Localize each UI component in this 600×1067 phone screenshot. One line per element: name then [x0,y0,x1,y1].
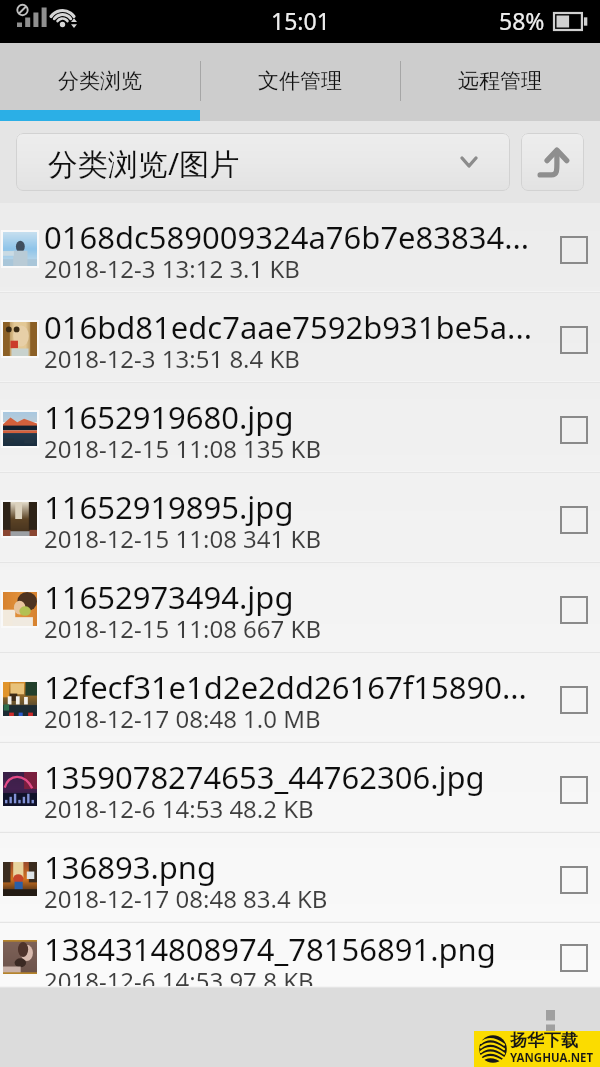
button[interactable]: 11652919895.jpg [0,473,600,563]
button[interactable]: Select file [540,293,600,383]
button[interactable]: Select file [540,383,600,473]
button[interactable]: 136893.png [0,833,600,923]
staticText: 016bd81edc7aae7592b931be5a... [44,306,533,348]
button[interactable]: 016bd81edc7aae7592b931be5a... [0,293,600,383]
button[interactable]: 11652919680.jpg [0,383,600,473]
staticText: 1359078274653_44762306.jpg [44,756,485,798]
staticText: YANGHUA.NET [510,1050,594,1065]
staticText: 分类浏览/图片 [48,143,240,184]
staticText: 2018-12-15 11:08 667 KB [44,612,321,645]
staticText: 2018-12-6 14:53 48.2 KB [44,792,314,825]
button[interactable]: 远程管理 [400,43,600,121]
button[interactable]: Select file [540,653,600,743]
staticText: 11652919680.jpg [44,396,294,438]
staticText: 12fecf31e1d2e2dd26167f15890... [44,666,527,708]
staticText: 2018-12-15 11:08 341 KB [44,522,321,555]
staticText: 136893.png [44,846,216,888]
button[interactable]: Select file [540,923,600,988]
staticText: 2018-12-15 11:08 135 KB [44,432,321,465]
staticText: 扬华下载 [510,1030,578,1051]
button[interactable]: Select file [540,743,600,833]
staticText: 1384314808974_78156891.png [44,928,496,970]
staticText: 2018-12-6 14:53 97.8 KB [44,964,314,987]
button[interactable]: 分类浏览 [0,43,200,121]
staticText: 11652973494.jpg [44,576,294,618]
button[interactable]: 1359078274653_44762306.jpg [0,743,600,833]
staticText: 11652919895.jpg [44,486,294,528]
staticText: 远程管理 [458,68,542,94]
staticText: 15:01 [271,5,330,36]
button[interactable]: 11652973494.jpg [0,563,600,653]
button[interactable]: 12fecf31e1d2e2dd26167f15890... [0,653,600,743]
button[interactable]: Select file [540,833,600,923]
button[interactable]: Up one level [521,133,584,191]
button[interactable]: 分类浏览/图片 [16,133,510,191]
staticText: 文件管理 [258,68,342,94]
button[interactable]: 文件管理 [200,43,400,121]
button[interactable]: Select file [540,203,600,293]
staticText: 分类浏览 [58,68,142,94]
staticText: 0168dc589009324a76b7e83834... [44,216,530,258]
button[interactable]: Select file [540,473,600,563]
staticText: 2018-12-3 13:51 8.4 KB [44,342,300,375]
button[interactable]: 1384314808974_78156891.png [0,923,600,988]
button[interactable]: 0168dc589009324a76b7e83834... [0,203,600,293]
staticText: 2018-12-3 13:12 3.1 KB [44,252,300,285]
button[interactable]: Select file [540,563,600,653]
staticText: 2018-12-17 08:48 1.0 MB [44,702,321,735]
staticText: 2018-12-17 08:48 83.4 KB [44,882,328,915]
staticText: 58% [499,5,545,36]
